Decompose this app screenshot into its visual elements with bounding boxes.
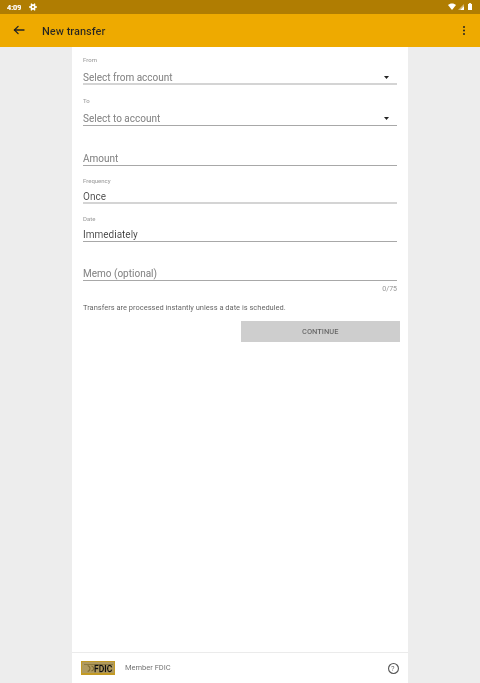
button[interactable]: Help: [383, 658, 403, 678]
staticText: New transfer: [42, 25, 106, 38]
staticText: Select from account: [83, 72, 173, 84]
button[interactable]: From: [83, 56, 397, 85]
staticText: Transfers are processed instantly unless…: [83, 303, 286, 312]
staticText: FDIC: [94, 664, 113, 674]
staticText: Memo (optional): [83, 268, 158, 280]
staticText: Immediately: [83, 229, 138, 241]
button[interactable]: CONTINUE: [241, 321, 400, 342]
staticText: Date: [83, 215, 96, 222]
staticText: Member FDIC: [125, 663, 171, 672]
staticText: Select to account: [83, 113, 161, 125]
button[interactable]: Memo (optional): [83, 252, 397, 281]
staticText: CONTINUE: [302, 327, 339, 336]
button[interactable]: To: [83, 97, 397, 126]
staticText: To: [83, 97, 90, 104]
staticText: Frequency: [83, 177, 111, 184]
button[interactable]: Amount: [83, 137, 397, 166]
button[interactable]: Frequency: [83, 175, 397, 204]
staticText: 4:09: [7, 3, 22, 12]
staticText: ?: [391, 664, 395, 673]
staticText: Amount: [83, 153, 119, 165]
staticText: From: [83, 56, 97, 63]
button[interactable]: Navigate up: [7, 18, 31, 42]
staticText: 0/75: [83, 285, 397, 293]
button[interactable]: Date: [83, 213, 397, 242]
button[interactable]: More options: [452, 18, 476, 42]
staticText: Once: [83, 191, 106, 203]
